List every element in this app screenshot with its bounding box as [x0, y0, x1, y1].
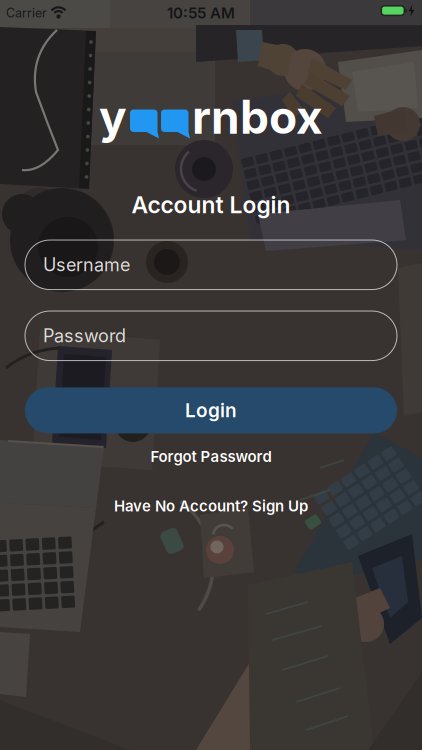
button[interactable]: Have No Account? Sign Up	[114, 497, 308, 515]
staticText: Have No Account? Sign Up	[114, 497, 308, 515]
staticText: Login	[185, 399, 237, 422]
staticText: Username	[43, 254, 130, 276]
button[interactable]: Forgot Password	[150, 447, 271, 465]
staticText: y	[99, 89, 127, 145]
staticText: Forgot Password	[150, 447, 271, 465]
button[interactable]: Password	[25, 311, 397, 361]
button[interactable]: Login	[25, 387, 397, 433]
staticText: Carrier	[6, 5, 47, 20]
staticText: rnbox	[192, 89, 323, 145]
staticText: Password	[43, 325, 126, 347]
button[interactable]: Username	[25, 240, 397, 290]
staticText: Account Login	[131, 191, 290, 219]
staticText: 10:55 AM	[167, 4, 235, 22]
